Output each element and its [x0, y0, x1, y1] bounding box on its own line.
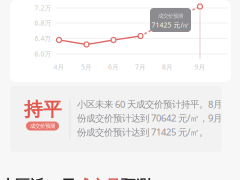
- staticText: 6月: [108, 63, 119, 71]
- staticText: 71425 元/㎡: [151, 21, 189, 29]
- staticText: 6.8万: [34, 19, 51, 27]
- staticText: 成交价预测: [158, 13, 183, 19]
- staticText: 8月: [162, 63, 173, 71]
- staticText: 7.2万: [34, 4, 51, 12]
- staticText: 小区未来 60 天成交价预计持平。8月份成交价预计达到 70642 元/㎡，9月…: [77, 98, 222, 138]
- staticText: 预测: [121, 177, 151, 180]
- staticText: 9月: [194, 63, 205, 71]
- staticText: 6.0万: [34, 50, 51, 58]
- staticText: 4月: [53, 63, 64, 71]
- staticText: 小区近60天: [0, 175, 76, 180]
- staticText: 成交价预测: [30, 123, 55, 129]
- staticText: 持平: [24, 98, 62, 121]
- staticText: 5月: [81, 63, 92, 71]
- staticText: 成交量: [76, 177, 121, 180]
- staticText: 6.4万: [34, 34, 51, 43]
- staticText: 7月: [135, 63, 146, 71]
